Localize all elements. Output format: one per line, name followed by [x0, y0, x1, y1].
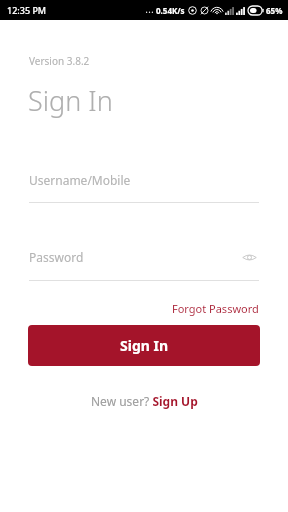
button[interactable]: Sign In: [28, 325, 260, 366]
button[interactable]: Username/Mobile: [29, 172, 259, 188]
staticText: Username/Mobile: [29, 172, 259, 188]
button[interactable]: Show password: [239, 247, 259, 267]
staticText: 65%: [266, 5, 283, 16]
staticText: Password: [29, 249, 239, 265]
staticText: 12:35 PM: [7, 4, 47, 16]
button[interactable]: Password: [29, 247, 259, 267]
staticText: Sign In: [120, 336, 169, 355]
staticText: New user? Sign Up: [91, 393, 198, 409]
staticText: 0.54K/s: [156, 5, 185, 16]
button[interactable]: Forgot Password: [172, 299, 288, 318]
staticText: Sign In: [28, 82, 113, 119]
staticText: Forgot Password: [172, 301, 259, 316]
staticText: Version 3.8.2: [29, 54, 90, 68]
button[interactable]: New user? Sign Up: [83, 390, 206, 412]
